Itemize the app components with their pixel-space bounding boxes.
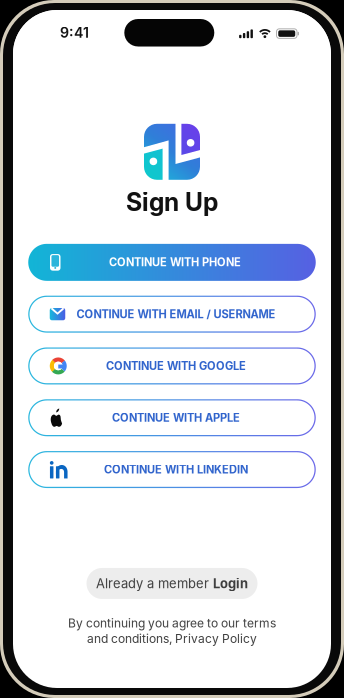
- staticText: CONTINUE WITH APPLE: [112, 411, 240, 424]
- button[interactable]: CONTINUE WITH PHONE: [28, 244, 316, 281]
- staticText: 9:41: [60, 24, 89, 41]
- staticText: CONTINUE WITH PHONE: [109, 256, 241, 269]
- button[interactable]: Already a member Login: [86, 568, 257, 599]
- staticText: Sign Up: [126, 187, 218, 217]
- staticText: CONTINUE WITH LINKEDIN: [104, 463, 248, 476]
- staticText: CONTINUE WITH EMAIL / USERNAME: [76, 307, 275, 321]
- button[interactable]: CONTINUE WITH EMAIL / USERNAME: [28, 296, 316, 333]
- staticText: Already a member Login: [96, 576, 248, 591]
- button[interactable]: CONTINUE WITH APPLE: [28, 399, 316, 436]
- button[interactable]: CONTINUE WITH LINKEDIN: [28, 451, 316, 488]
- button[interactable]: CONTINUE WITH GOOGLE: [28, 347, 316, 384]
- staticText: By continuing you agree to our terms: [68, 616, 276, 630]
- staticText: and conditions, Privacy Policy: [87, 631, 257, 646]
- staticText: CONTINUE WITH GOOGLE: [106, 359, 246, 373]
